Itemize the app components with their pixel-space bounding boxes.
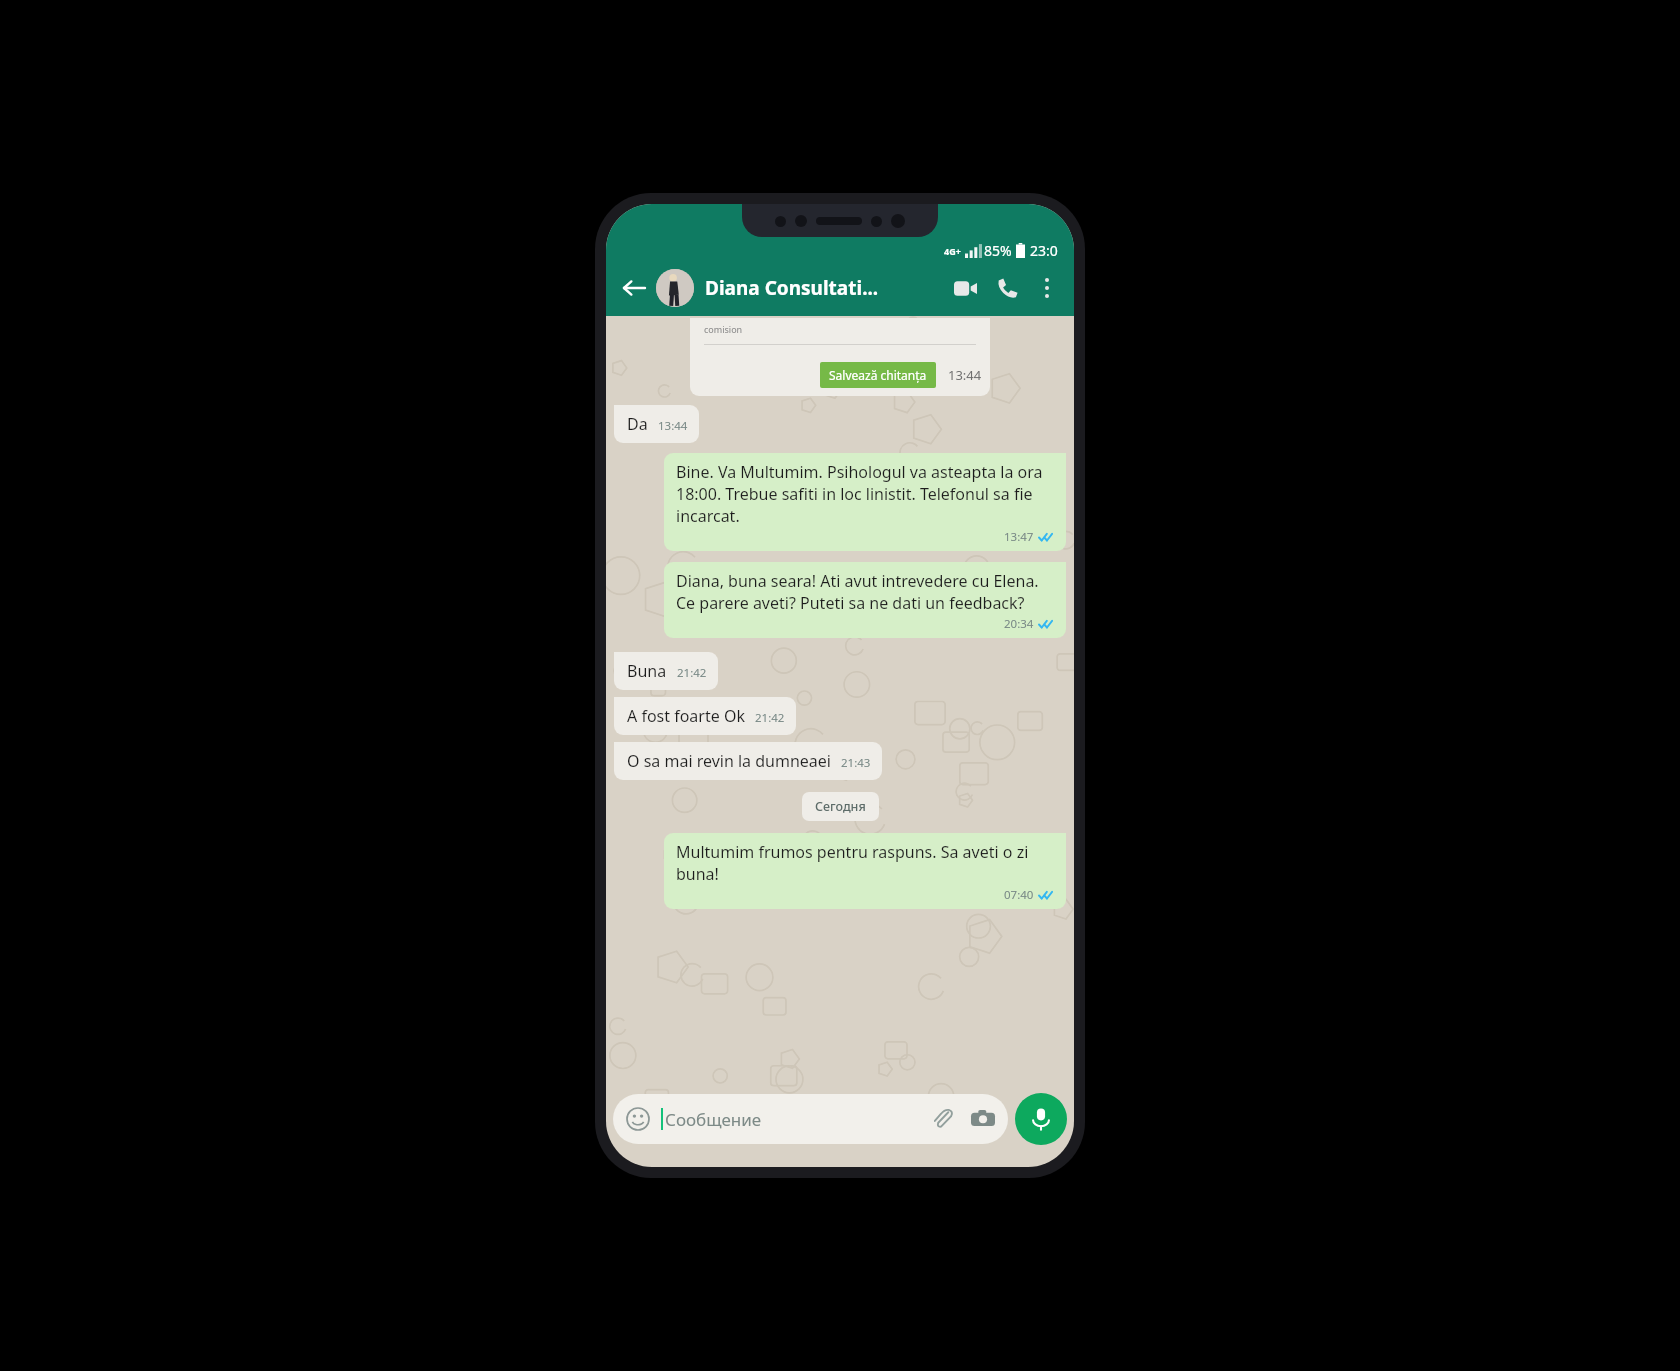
- staticText: 23:0: [1030, 241, 1058, 260]
- button[interactable]: More options: [1028, 269, 1066, 307]
- button[interactable]: O sa mai revin la dumneaei: [614, 742, 882, 780]
- staticText: 07:40: [1004, 887, 1034, 903]
- staticText: 21:43: [841, 755, 871, 771]
- staticText: 13:44: [948, 366, 982, 384]
- staticText: Diana, buna seara! Ati avut intrevedere …: [676, 570, 1056, 614]
- button[interactable]: Diana, buna seara! Ati avut intrevedere …: [664, 562, 1066, 638]
- button[interactable]: Video call: [944, 267, 986, 309]
- button[interactable]: Voice message: [1015, 1093, 1067, 1145]
- staticText: Сегодня: [815, 798, 866, 815]
- staticText: Bine. Va Multumim. Psihologul va asteapt…: [676, 461, 1056, 527]
- button[interactable]: Da: [614, 405, 699, 443]
- staticText: 21:42: [677, 665, 707, 681]
- staticText: O sa mai revin la dumneaei: [627, 750, 831, 772]
- staticText: 13:44: [658, 418, 688, 434]
- button[interactable]: Contact photo: [656, 269, 694, 307]
- button[interactable]: Buna: [614, 652, 718, 690]
- staticText: 20:34: [1004, 616, 1034, 632]
- button[interactable]: Camera: [971, 1107, 995, 1131]
- staticText: Buna: [627, 660, 667, 682]
- button[interactable]: Emoji: [613, 1094, 1008, 1144]
- button[interactable]: Attach: [931, 1107, 955, 1131]
- button[interactable]: Call: [986, 267, 1028, 309]
- staticText: 21:42: [755, 710, 785, 726]
- button[interactable]: Diana Consultati...: [705, 275, 944, 301]
- staticText: Multumim frumos pentru raspuns. Sa aveti…: [676, 841, 1056, 885]
- staticText: 4G+: [944, 245, 961, 257]
- staticText: Da: [627, 413, 648, 435]
- staticText: Salvează chitanța: [829, 367, 927, 383]
- button[interactable]: Back: [614, 268, 654, 308]
- staticText: A fost foarte Ok: [627, 705, 745, 727]
- button[interactable]: comision: [690, 318, 990, 396]
- staticText: Сообщение: [665, 1108, 931, 1131]
- button[interactable]: Multumim frumos pentru raspuns. Sa aveti…: [664, 833, 1066, 909]
- button[interactable]: Emoji: [626, 1107, 650, 1131]
- staticText: 13:47: [1004, 529, 1034, 545]
- button[interactable]: Bine. Va Multumim. Psihologul va asteapt…: [664, 453, 1066, 551]
- staticText: 85%: [984, 241, 1012, 260]
- staticText: comision: [704, 323, 743, 335]
- button[interactable]: A fost foarte Ok: [614, 697, 796, 735]
- button[interactable]: Salvează chitanța: [829, 367, 927, 383]
